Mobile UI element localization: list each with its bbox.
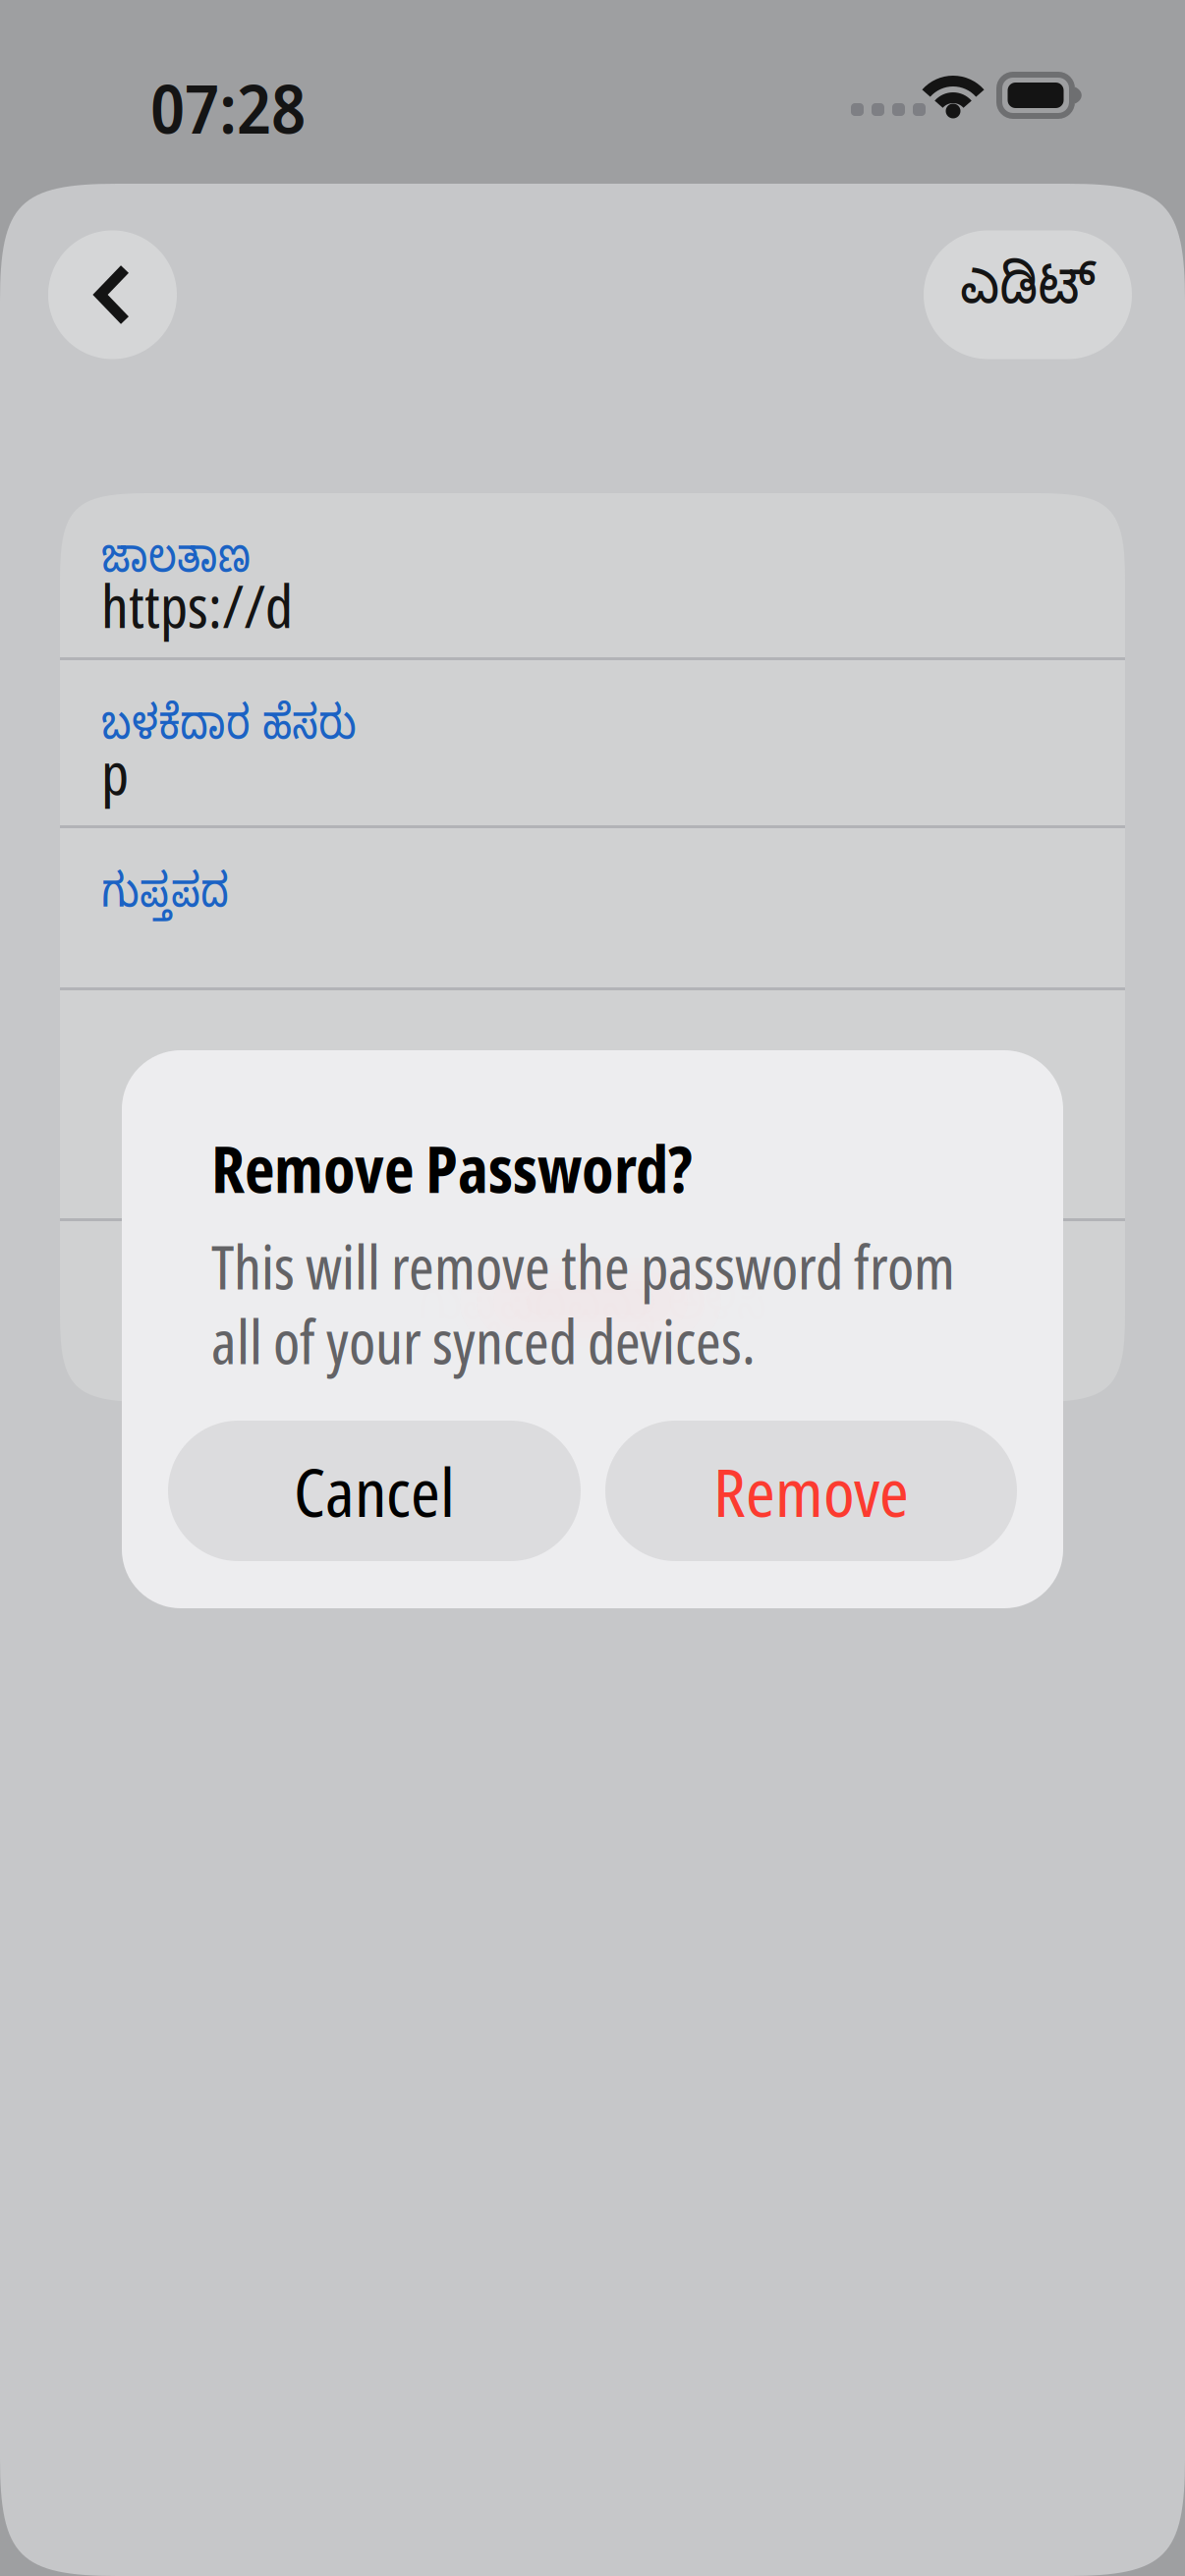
button[interactable]: ಜಾಲತಾಣ (60, 493, 1125, 657)
staticText: Cancel (294, 1445, 455, 1536)
button[interactable]: Back (48, 230, 177, 360)
staticText: https://d (101, 565, 293, 645)
staticText: 07:28 (150, 61, 306, 154)
staticText: ಗುಪ್ತಪದವನ್ನು ಅಳಿಸಿ (418, 1274, 767, 1349)
button[interactable]: Remove (605, 1421, 1017, 1561)
button[interactable]: Cancel (168, 1421, 581, 1561)
button[interactable]: ಎಡಿಟ್ (924, 230, 1132, 359)
staticText: p (101, 732, 129, 812)
button[interactable]: ಗುಪ್ತಪದ (60, 828, 1125, 987)
staticText: ಎಡಿಟ್ (960, 254, 1096, 335)
staticText: Remove (713, 1445, 909, 1536)
staticText: This will remove the password from (211, 1225, 955, 1307)
staticText: ಬಳಕೆದಾರ ಹೆಸರು (101, 700, 357, 764)
button[interactable]: ಬಳಕೆದಾರ ಹೆಸರು (60, 660, 1125, 825)
staticText: ಜಾಲತಾಣ (101, 533, 251, 597)
button[interactable]: ಗುಪ್ತಪದವನ್ನು ಅಳಿಸಿ (60, 1221, 1125, 1402)
staticText: Remove Password? (211, 1123, 693, 1212)
staticText: all of your synced devices. (211, 1300, 756, 1382)
staticText: ಗುಪ್ತಪದ (101, 868, 229, 932)
